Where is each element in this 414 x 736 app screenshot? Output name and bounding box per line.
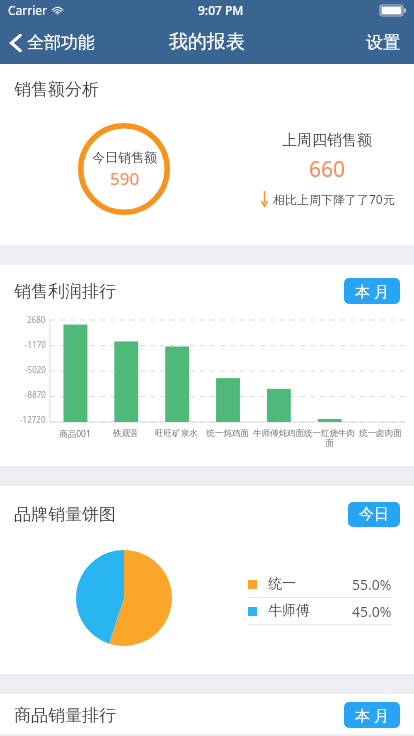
- staticText: 今日销售额: [92, 149, 157, 165]
- staticText: 商品001: [59, 428, 91, 440]
- staticText: 牛师傅炖鸡面: [253, 428, 304, 439]
- staticText: 2680: [27, 314, 46, 325]
- staticText: 55.0%: [352, 575, 392, 594]
- staticText: 今日: [359, 505, 389, 524]
- button[interactable]: 今日: [348, 502, 400, 527]
- button[interactable]: 本 月: [344, 702, 400, 728]
- staticText: 全部功能: [27, 32, 95, 53]
- staticText: 统一: [268, 575, 296, 593]
- staticText: -5020: [25, 364, 46, 375]
- staticText: 本 月: [355, 281, 389, 301]
- staticText: 旺旺矿泉水: [155, 428, 198, 439]
- button[interactable]: 本 月: [344, 278, 400, 304]
- staticText: 我的报表: [169, 30, 245, 54]
- staticText: -1170: [25, 339, 46, 350]
- staticText: 统一炖鸡面: [206, 428, 249, 439]
- staticText: -8870: [25, 389, 46, 400]
- staticText: 统一红烧牛肉面: [304, 428, 355, 449]
- staticText: Carrier: [8, 2, 48, 18]
- staticText: 销售额分析: [14, 79, 99, 100]
- staticText: 相比上周下降了了70元: [273, 191, 395, 207]
- staticText: 本 月: [355, 705, 389, 725]
- staticText: 9:07 PM: [198, 2, 244, 18]
- staticText: 品牌销量饼图: [14, 504, 116, 525]
- staticText: 590: [110, 167, 140, 190]
- staticText: 上周四销售额: [282, 131, 372, 150]
- staticText: 统一卤肉面: [359, 428, 402, 439]
- staticText: 牛师傅: [268, 602, 310, 620]
- staticText: 商品销量排行: [14, 705, 116, 726]
- button[interactable]: 全部功能: [0, 26, 105, 59]
- staticText: 45.0%: [352, 602, 392, 621]
- button[interactable]: 统一: [248, 571, 392, 597]
- button[interactable]: 设置: [352, 24, 414, 61]
- staticText: -12720: [20, 414, 46, 425]
- staticText: 铁观音: [113, 428, 139, 439]
- staticText: 660: [309, 155, 346, 184]
- staticText: 销售利润排行: [14, 281, 116, 302]
- button[interactable]: 牛师傅: [248, 598, 392, 624]
